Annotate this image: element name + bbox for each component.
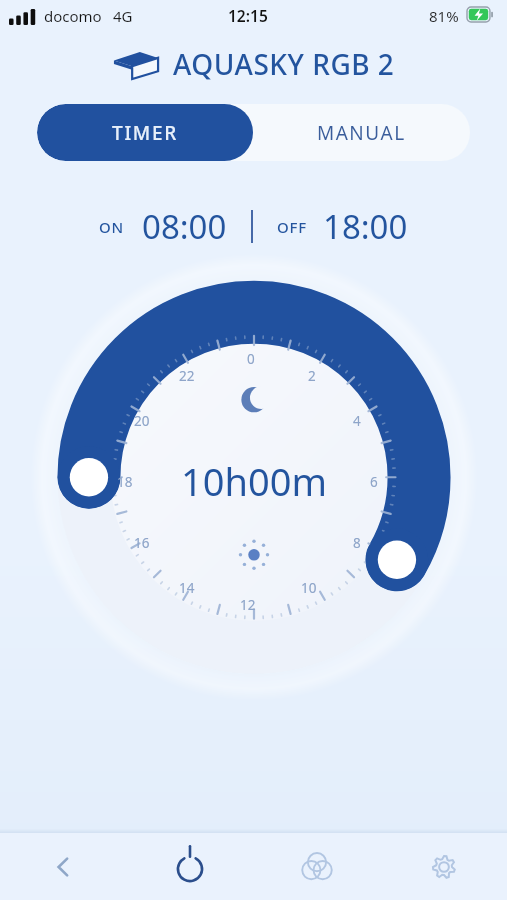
button[interactable]: ON xyxy=(99,204,227,249)
staticText: 81% xyxy=(429,6,459,26)
button[interactable]: Timer dial, 10h00m xyxy=(44,285,464,697)
staticText: AQUASKY RGB 2 xyxy=(173,45,395,83)
button[interactable]: Back xyxy=(0,833,126,900)
staticText: 4G xyxy=(113,6,133,26)
staticText: 0 xyxy=(247,350,255,368)
staticText: 18 xyxy=(117,473,133,491)
staticText: 20 xyxy=(134,412,150,430)
staticText: MANUAL xyxy=(317,120,406,146)
staticText: 08:00 xyxy=(142,204,227,249)
button[interactable]: TIMER xyxy=(37,104,253,161)
button[interactable]: Settings xyxy=(380,833,507,900)
button[interactable]: Colour xyxy=(253,833,380,900)
staticText: 8 xyxy=(353,534,361,552)
staticText: 12 xyxy=(240,596,256,614)
button[interactable]: Power xyxy=(126,833,253,900)
staticText: 16 xyxy=(134,534,150,552)
staticText: 4 xyxy=(353,412,361,430)
staticText: 2 xyxy=(308,367,316,385)
staticText: TIMER xyxy=(112,120,178,146)
staticText: 6 xyxy=(370,473,378,491)
staticText: 22 xyxy=(179,367,195,385)
staticText: 18:00 xyxy=(323,204,408,249)
button[interactable]: MANUAL xyxy=(253,104,470,161)
staticText: 14 xyxy=(179,579,195,597)
staticText: OFF xyxy=(277,217,308,237)
staticText: ON xyxy=(99,217,125,237)
button[interactable]: OFF xyxy=(277,204,408,249)
staticText: 10 xyxy=(301,579,317,597)
staticText: 10h00m xyxy=(181,455,327,507)
staticText: docomo xyxy=(44,6,102,26)
staticText: 12:15 xyxy=(228,5,268,26)
